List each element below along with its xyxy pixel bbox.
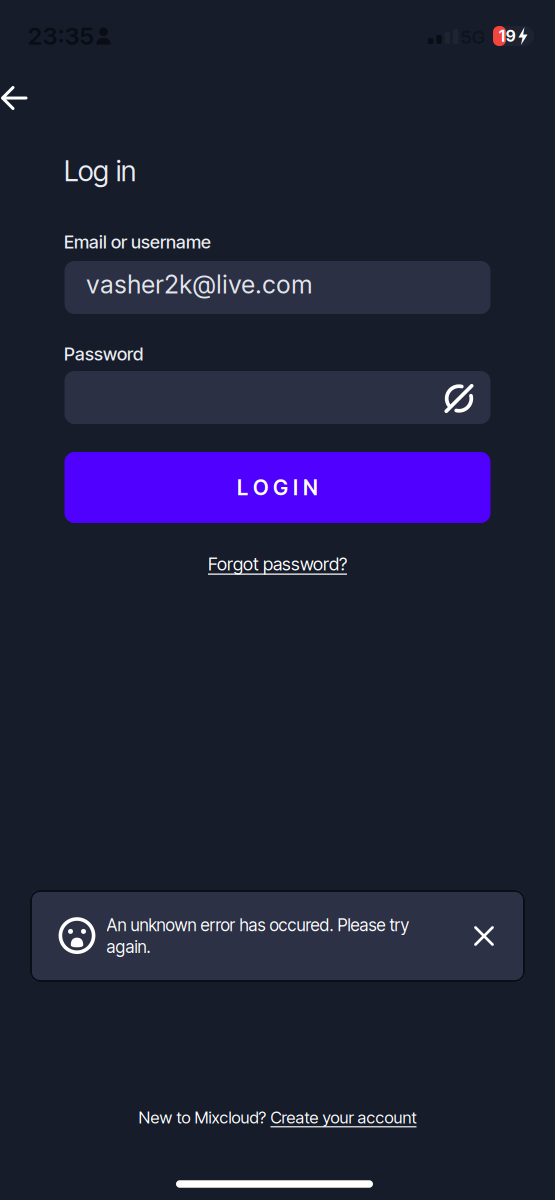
staticText: New to Mixcloud? Create your account bbox=[138, 1107, 416, 1127]
button[interactable]: Dismiss bbox=[462, 914, 506, 958]
staticText: 19 bbox=[498, 27, 515, 45]
button[interactable]: Email or username bbox=[64, 261, 490, 314]
staticText: Log in bbox=[64, 154, 136, 188]
staticText: 5G bbox=[460, 26, 485, 48]
staticText: An unknown error has occured. Please try… bbox=[106, 915, 409, 957]
button[interactable]: Show password bbox=[435, 374, 483, 422]
staticText: vasher2k@live.com bbox=[86, 269, 313, 300]
button[interactable]: Forgot password? bbox=[208, 553, 347, 575]
staticText: Email or username bbox=[64, 231, 211, 253]
button[interactable]: LOGIN bbox=[64, 452, 490, 523]
staticText: 23:35 bbox=[27, 22, 94, 50]
button[interactable]: New to Mixcloud? Create your account bbox=[138, 1107, 416, 1127]
staticText: Forgot password? bbox=[208, 553, 347, 575]
staticText: Password bbox=[64, 343, 143, 365]
button[interactable]: Back bbox=[0, 76, 60, 120]
staticText: L O G I N bbox=[237, 475, 318, 500]
button[interactable]: Password bbox=[64, 371, 490, 424]
